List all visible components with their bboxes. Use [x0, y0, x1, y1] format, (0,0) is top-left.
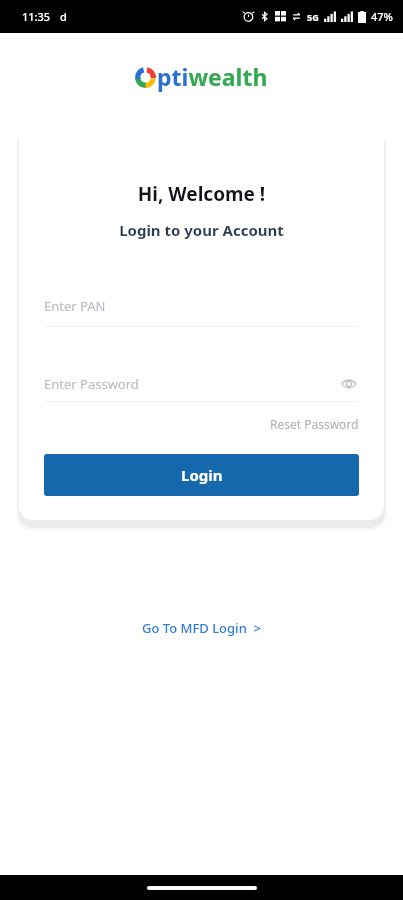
staticText: 11:35 [22, 9, 51, 24]
staticText: Go To MFD Login > [142, 619, 261, 637]
staticText: Enter PAN [44, 297, 106, 315]
staticText: ptiwealth [157, 61, 268, 92]
staticText: Hi, Welcome ! [19, 181, 384, 207]
staticText: d [60, 9, 67, 24]
button[interactable]: Login [44, 454, 359, 496]
button[interactable]: Enter Password [44, 374, 359, 402]
button[interactable]: Show password [339, 374, 359, 394]
staticText: 5G [307, 11, 319, 23]
staticText: Login to your Account [19, 220, 384, 240]
button[interactable]: Go To MFD Login > [142, 619, 261, 637]
staticText: Reset Password [270, 416, 359, 432]
staticText: Enter Password [44, 375, 139, 393]
staticText: 47% [371, 9, 393, 24]
staticText: Login [181, 465, 223, 485]
button[interactable]: Enter PAN [44, 297, 359, 327]
button[interactable]: Reset Password [270, 416, 359, 432]
